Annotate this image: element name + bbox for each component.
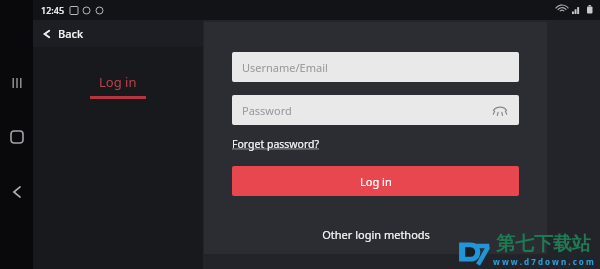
staticText: Username/Email — [242, 60, 328, 75]
button[interactable]: Forget password? — [232, 137, 320, 151]
staticText: Password — [242, 103, 292, 118]
staticText: Log in — [99, 73, 137, 91]
button[interactable]: Log in — [90, 73, 146, 99]
button[interactable]: Recent apps — [0, 66, 33, 99]
staticText: Forget password? — [232, 137, 320, 151]
button[interactable]: Back — [33, 20, 203, 47]
staticText: Back — [58, 26, 84, 41]
button[interactable]: Password — [232, 95, 519, 125]
button[interactable]: Back — [0, 175, 33, 208]
staticText: 第七下载站 — [496, 232, 591, 256]
button[interactable]: Log in — [232, 166, 519, 196]
staticText: w w w . d 7 d o w n . c o m — [493, 256, 594, 267]
staticText: Other login methods — [322, 227, 430, 242]
button[interactable]: Show password — [491, 101, 509, 119]
button[interactable]: Home — [0, 120, 33, 153]
staticText: Log in — [360, 174, 392, 189]
staticText: 12:45 — [41, 4, 65, 16]
button[interactable]: Username/Email — [232, 52, 519, 82]
button[interactable]: Other login methods — [322, 227, 430, 254]
